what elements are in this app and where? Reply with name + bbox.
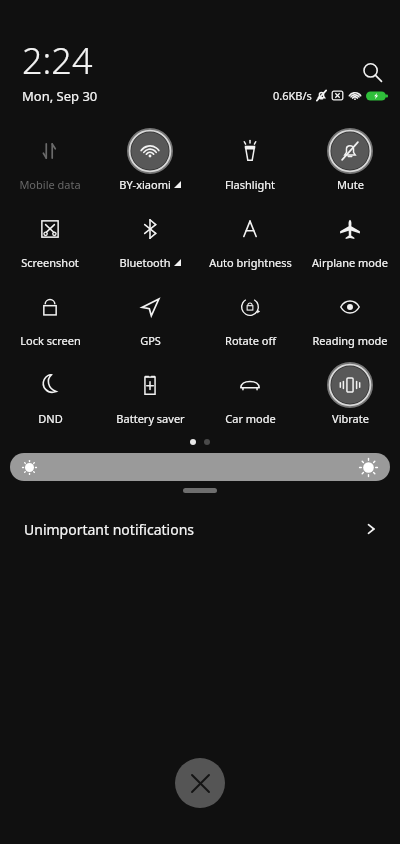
staticText: Auto brightness bbox=[209, 255, 292, 270]
button[interactable]: Lock screen bbox=[0, 280, 100, 355]
button[interactable]: Close bbox=[175, 758, 225, 808]
staticText: 0.6KB/s bbox=[273, 88, 312, 103]
button[interactable]: Battery saver bbox=[100, 358, 200, 433]
button[interactable]: GPS bbox=[100, 280, 200, 355]
staticText: Mobile data bbox=[19, 177, 81, 192]
staticText: Mute bbox=[337, 177, 364, 192]
button[interactable]: Airplane mode bbox=[300, 202, 400, 277]
button[interactable]: Reading mode bbox=[300, 280, 400, 355]
staticText: GPS bbox=[140, 333, 161, 348]
staticText: Airplane mode bbox=[312, 255, 388, 270]
button[interactable]: Auto brightness bbox=[200, 202, 300, 277]
button[interactable]: Mobile data bbox=[0, 124, 100, 199]
staticText: Screenshot bbox=[21, 255, 79, 270]
staticText: BY-xiaomi bbox=[119, 177, 171, 192]
staticText: Bluetooth bbox=[119, 255, 171, 270]
staticText: Lock screen bbox=[20, 333, 81, 348]
staticText: Flashlight bbox=[225, 177, 275, 192]
button[interactable]: Mute bbox=[300, 124, 400, 199]
button[interactable]: Screenshot bbox=[0, 202, 100, 277]
staticText: 2:24 bbox=[22, 36, 93, 85]
button[interactable]: Rotate off bbox=[200, 280, 300, 355]
button[interactable]: Unimportant notifications bbox=[0, 509, 400, 549]
button[interactable]: Car mode bbox=[200, 358, 300, 433]
staticText: Unimportant notifications bbox=[24, 520, 194, 539]
button[interactable]: DND bbox=[0, 358, 100, 433]
staticText: Reading mode bbox=[312, 333, 388, 348]
button[interactable]: BY-xiaomi bbox=[100, 124, 200, 199]
staticText: Vibrate bbox=[332, 411, 369, 426]
staticText: Car mode bbox=[225, 411, 276, 426]
button[interactable]: Brightness bbox=[10, 453, 390, 481]
button[interactable]: Vibrate bbox=[300, 358, 400, 433]
button[interactable]: Search bbox=[356, 56, 388, 88]
button[interactable]: Bluetooth bbox=[100, 202, 200, 277]
staticText: DND bbox=[38, 411, 63, 426]
staticText: Rotate off bbox=[225, 333, 276, 348]
staticText: Mon, Sep 30 bbox=[22, 87, 98, 105]
button[interactable]: Flashlight bbox=[200, 124, 300, 199]
staticText: Battery saver bbox=[116, 411, 185, 426]
